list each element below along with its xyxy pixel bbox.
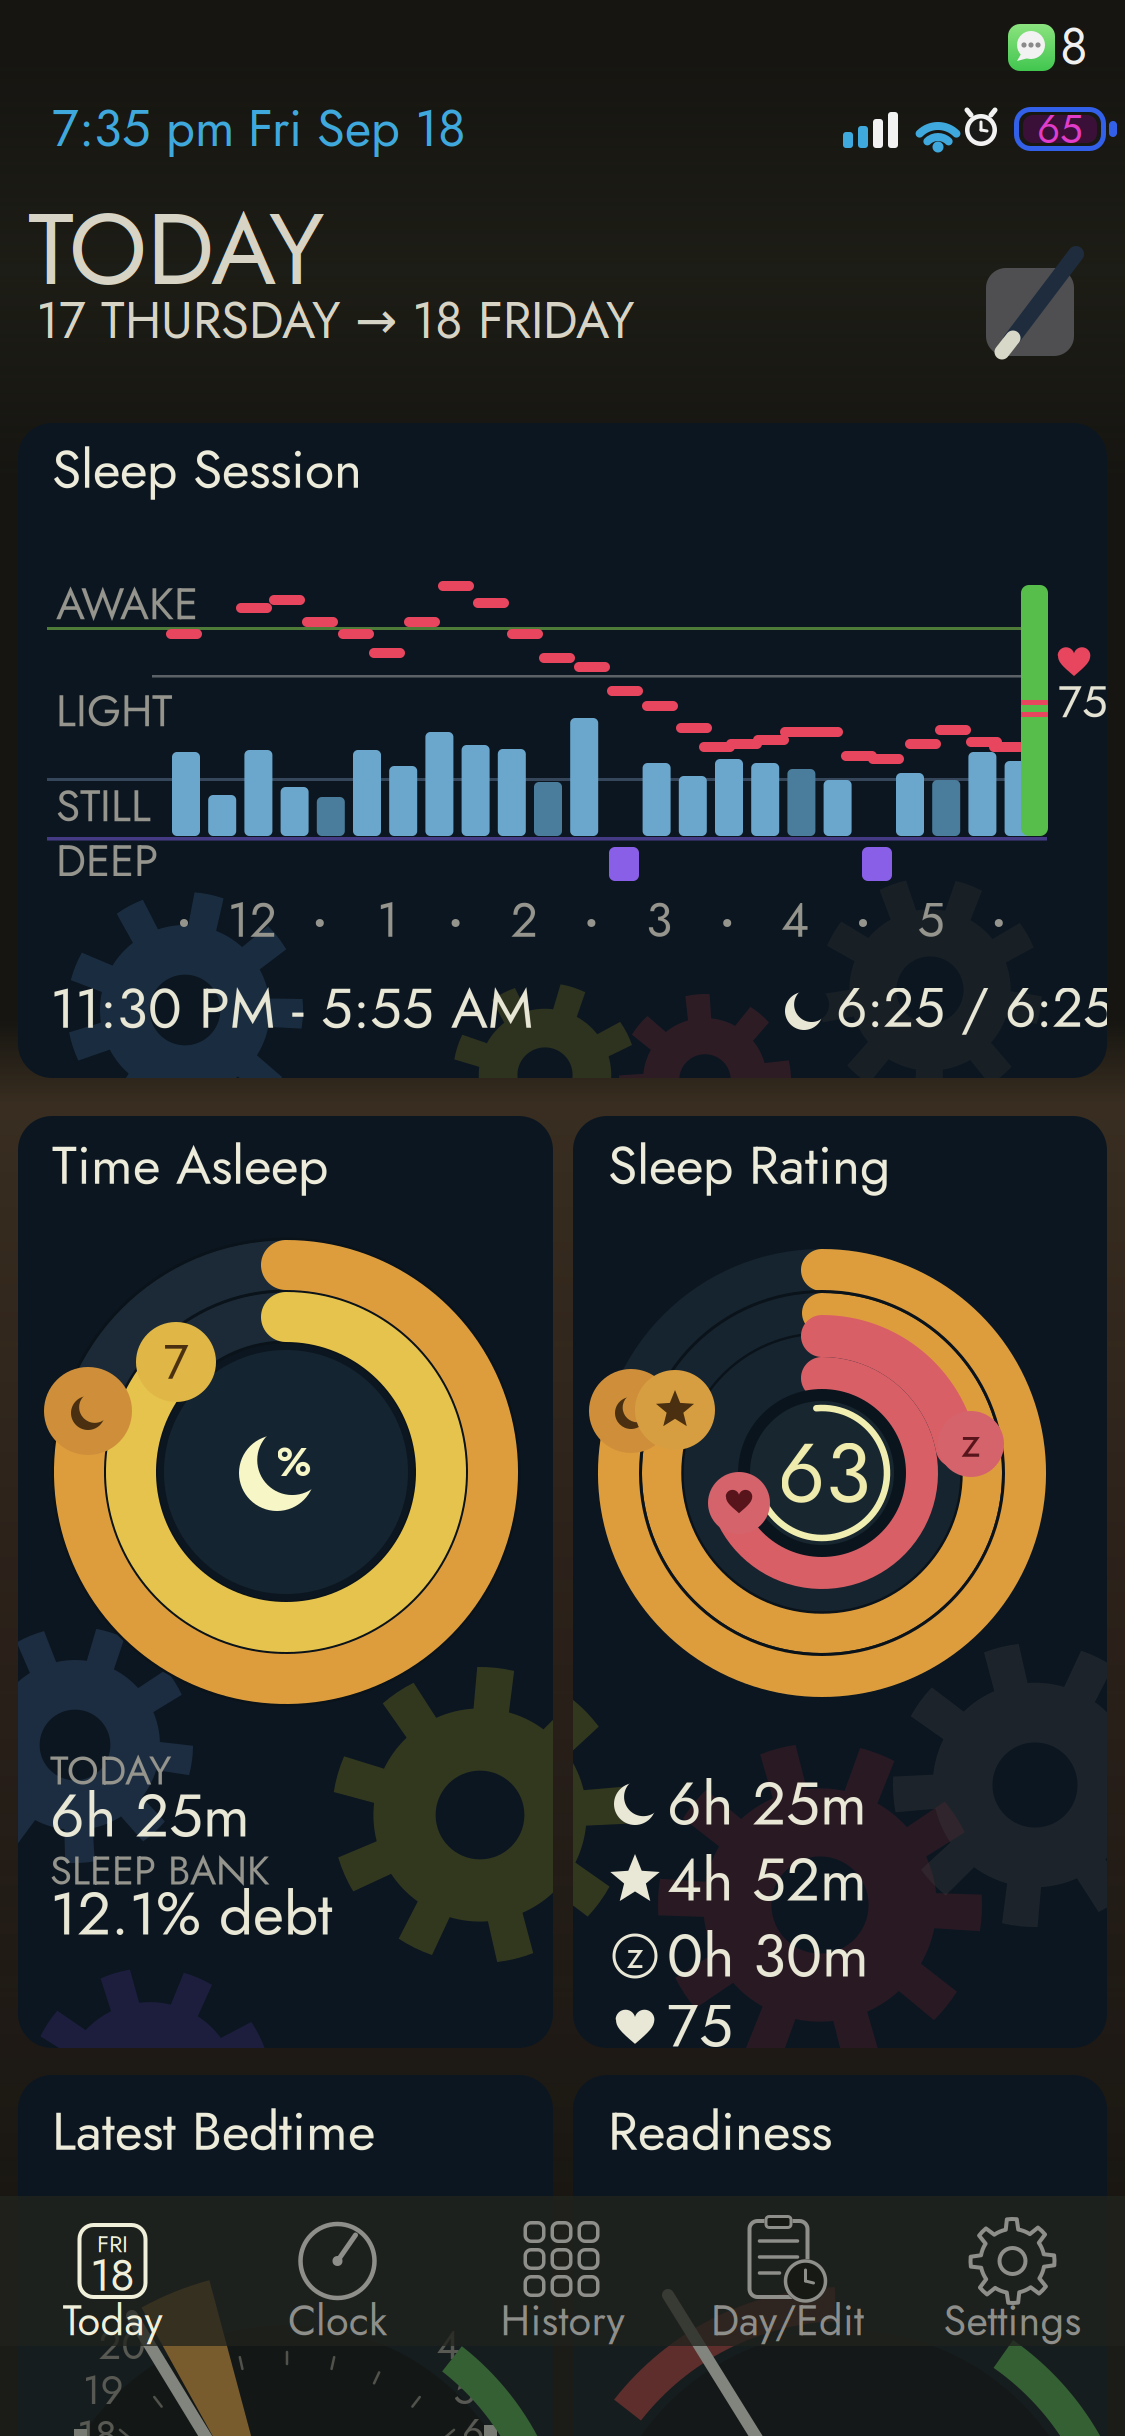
button[interactable]: Edit	[986, 268, 1074, 356]
staticText: STILL	[56, 774, 151, 838]
staticText: SLEEP BANK	[50, 1842, 270, 1899]
staticText: 6h 25m	[50, 1772, 250, 1859]
staticText: Today	[62, 2291, 162, 2351]
staticText: Latest Bedtime	[52, 2093, 375, 2170]
staticText: History	[500, 2291, 624, 2351]
staticText: 18	[90, 2242, 135, 2308]
button[interactable]: Clock	[225, 2204, 450, 2394]
staticText: 63	[777, 1413, 870, 1533]
button[interactable]: Settings	[900, 2204, 1125, 2394]
staticText: DEEP	[56, 829, 158, 893]
staticText: 8	[1060, 10, 1088, 83]
staticText: 20	[98, 2316, 145, 2374]
staticText: 75	[1058, 669, 1108, 734]
staticText: 12	[227, 885, 276, 955]
staticText: Time Asleep	[52, 1127, 328, 1204]
staticText: z	[961, 1411, 981, 1473]
staticText: 5	[917, 885, 944, 955]
staticText: 0h 30m	[667, 1912, 869, 1999]
staticText: 4	[436, 2316, 459, 2374]
staticText: %	[276, 1433, 311, 1491]
staticText: 75	[667, 1982, 733, 2069]
staticText: TODAY	[28, 178, 324, 321]
staticText: Sleep Session	[52, 431, 362, 508]
staticText: 6:25 / 6:25	[836, 968, 1114, 1047]
staticText: AWAKE	[56, 572, 198, 636]
staticText: 4h 52m	[667, 1836, 867, 1923]
staticText: 6	[461, 2404, 484, 2436]
staticText: 19	[82, 2361, 123, 2419]
staticText: z	[626, 1928, 643, 1982]
staticText: Settings	[943, 2291, 1081, 2351]
staticText: Readiness	[608, 2093, 832, 2170]
staticText: FRI	[97, 2227, 128, 2261]
button[interactable]: Today	[0, 2204, 225, 2394]
staticText: 4	[781, 885, 809, 955]
staticText: 65	[1037, 100, 1083, 158]
button[interactable]: Day/Edit	[675, 2204, 900, 2394]
staticText: 18	[77, 2406, 117, 2436]
staticText: Sleep Rating	[608, 1127, 890, 1204]
staticText: Fri Sep 18	[248, 92, 466, 165]
staticText: LIGHT	[56, 679, 172, 743]
staticText: Day/Edit	[711, 2291, 864, 2351]
staticText: 7	[163, 1327, 188, 1397]
staticText: 6h 25m	[667, 1760, 867, 1847]
staticText: TODAY	[50, 1742, 171, 1799]
staticText: 7:35 pm	[52, 92, 235, 165]
staticText: 12.1% debt	[50, 1870, 332, 1957]
button[interactable]: History	[450, 2204, 675, 2394]
staticText: 5	[453, 2361, 476, 2419]
staticText: Clock	[288, 2291, 387, 2351]
staticText: 3	[646, 885, 672, 955]
staticText: 11:30 PM - 5:55 AM	[50, 968, 533, 1049]
staticText: 2	[510, 885, 537, 955]
staticText: 17 THURSDAY → 18 FRIDAY	[36, 284, 634, 357]
staticText: 1	[377, 885, 399, 955]
